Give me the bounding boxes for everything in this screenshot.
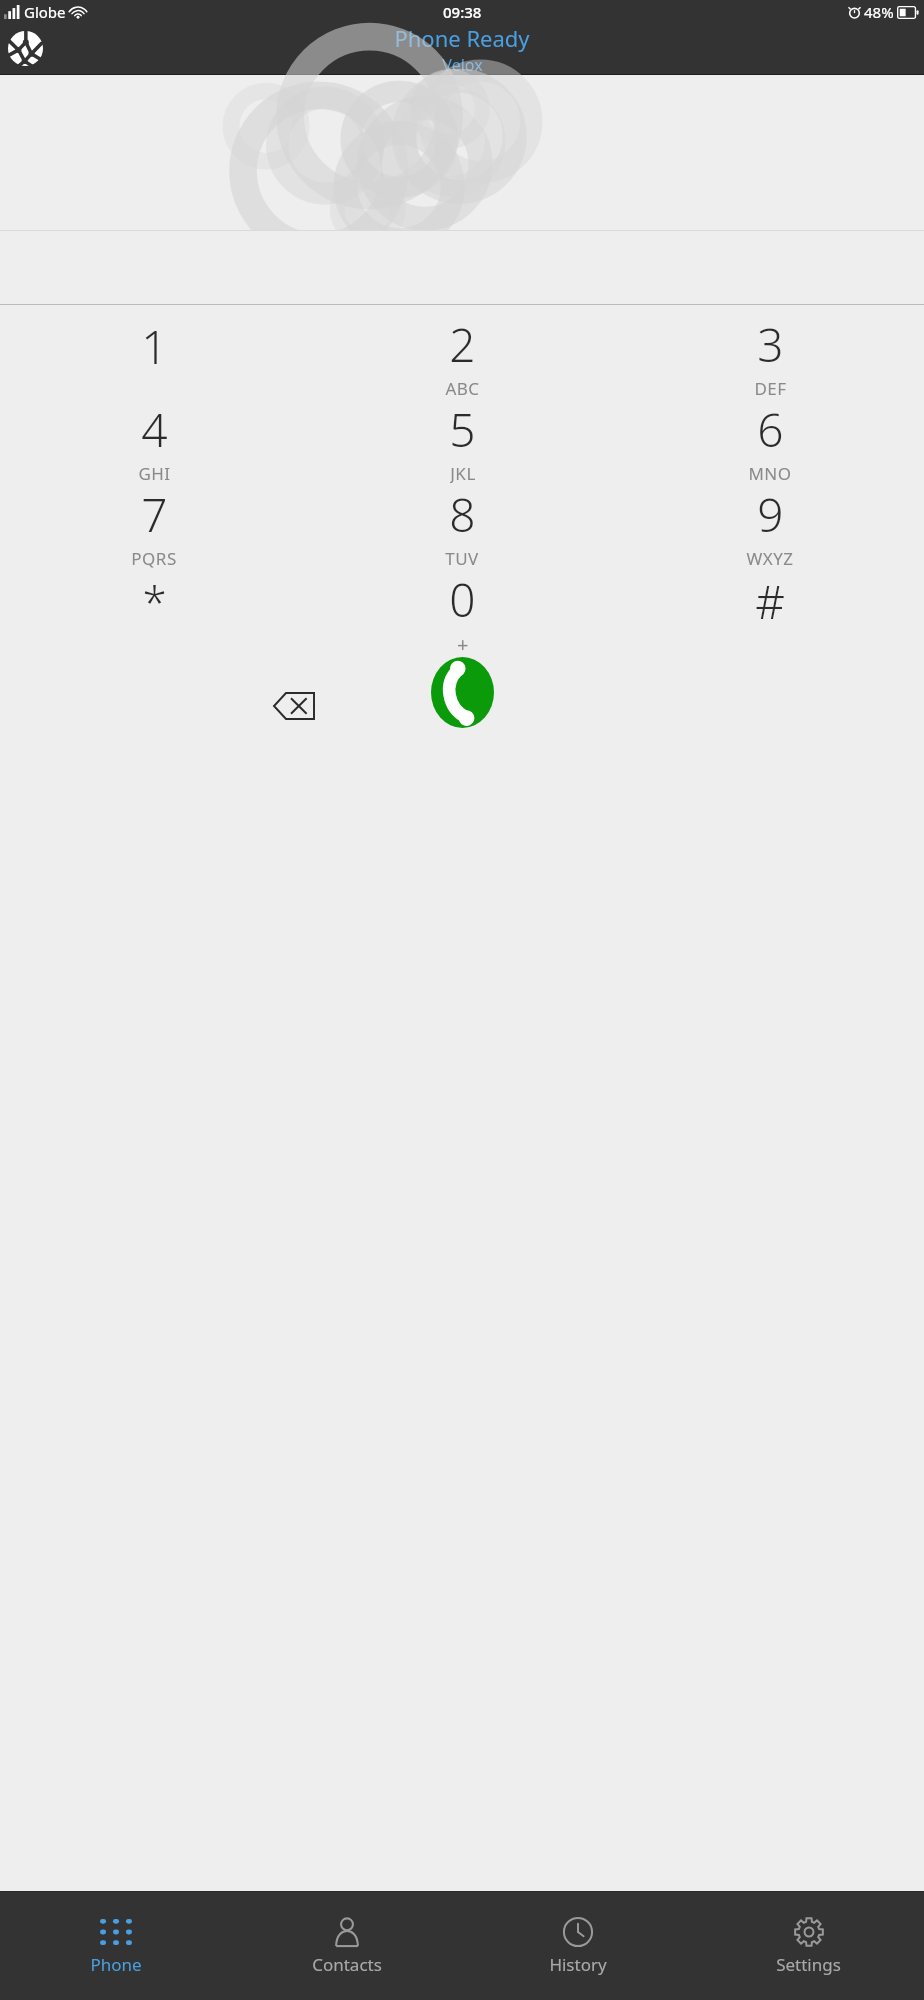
button[interactable]: 5 bbox=[308, 398, 616, 483]
button[interactable]: Phone bbox=[0, 1892, 231, 2000]
staticText: + bbox=[457, 631, 469, 653]
button[interactable]: * bbox=[0, 568, 308, 653]
staticText: 2 bbox=[449, 313, 476, 376]
staticText: Globe bbox=[24, 2, 66, 22]
staticText: 8 bbox=[449, 483, 476, 546]
staticText: WXYZ bbox=[746, 547, 794, 568]
staticText: Phone Ready bbox=[394, 23, 530, 53]
staticText: 09:38 bbox=[443, 2, 482, 22]
button[interactable]: 3 bbox=[616, 313, 924, 398]
staticText: History bbox=[549, 1953, 607, 1976]
staticText: 48% bbox=[864, 2, 894, 22]
staticText: Contacts bbox=[312, 1953, 382, 1976]
staticText: MNO bbox=[748, 462, 792, 483]
staticText: 5 bbox=[449, 398, 476, 461]
staticText: Settings bbox=[776, 1953, 841, 1976]
button[interactable]: 1 bbox=[0, 313, 308, 398]
button[interactable]: 8 bbox=[308, 483, 616, 568]
staticText: PQRS bbox=[131, 547, 177, 568]
button[interactable]: History bbox=[462, 1892, 693, 2000]
button[interactable]: 7 bbox=[0, 483, 308, 568]
staticText: 4 bbox=[141, 398, 168, 461]
staticText: GHI bbox=[138, 462, 171, 483]
staticText: ABC bbox=[445, 377, 480, 398]
button[interactable]: Call bbox=[431, 657, 494, 728]
staticText: 3 bbox=[757, 313, 784, 376]
button[interactable]: 0 bbox=[308, 568, 616, 653]
button[interactable]: Settings bbox=[693, 1892, 924, 2000]
staticText: Velox bbox=[442, 54, 483, 74]
button[interactable]: # bbox=[616, 568, 924, 653]
staticText: 9 bbox=[757, 483, 784, 546]
staticText: 7 bbox=[141, 483, 168, 546]
button[interactable]: App logo bbox=[7, 30, 44, 67]
button[interactable]: 6 bbox=[616, 398, 924, 483]
staticText: Phone bbox=[90, 1953, 142, 1976]
staticText: DEF bbox=[754, 377, 787, 398]
staticText: TUV bbox=[445, 547, 479, 568]
button[interactable]: 9 bbox=[616, 483, 924, 568]
staticText: 0 bbox=[449, 568, 476, 631]
button[interactable]: 4 bbox=[0, 398, 308, 483]
staticText: * bbox=[142, 572, 167, 632]
button[interactable]: Backspace bbox=[271, 689, 317, 723]
button[interactable]: 2 bbox=[308, 313, 616, 398]
button[interactable]: Contacts bbox=[231, 1892, 462, 2000]
staticText: 6 bbox=[757, 398, 784, 461]
staticText: # bbox=[755, 570, 785, 633]
staticText: JKL bbox=[450, 462, 476, 483]
staticText: 1 bbox=[141, 315, 168, 378]
